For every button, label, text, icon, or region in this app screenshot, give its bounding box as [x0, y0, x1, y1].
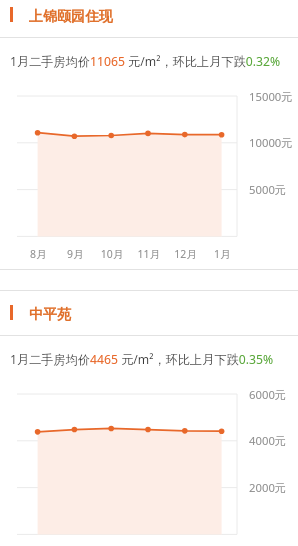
staticText: 上锦颐园住现 [29, 8, 113, 26]
button[interactable]: 上锦颐园住现 [0, 0, 298, 37]
staticText: 1月二手房均价11065 元/m²，环比上月下跌0.32% [10, 53, 281, 70]
staticText: 1月二手房均价4465 元/m²，环比上月下跌0.35% [10, 351, 274, 368]
button[interactable]: 中平苑 [0, 291, 298, 335]
staticText: 中平苑 [29, 306, 71, 324]
